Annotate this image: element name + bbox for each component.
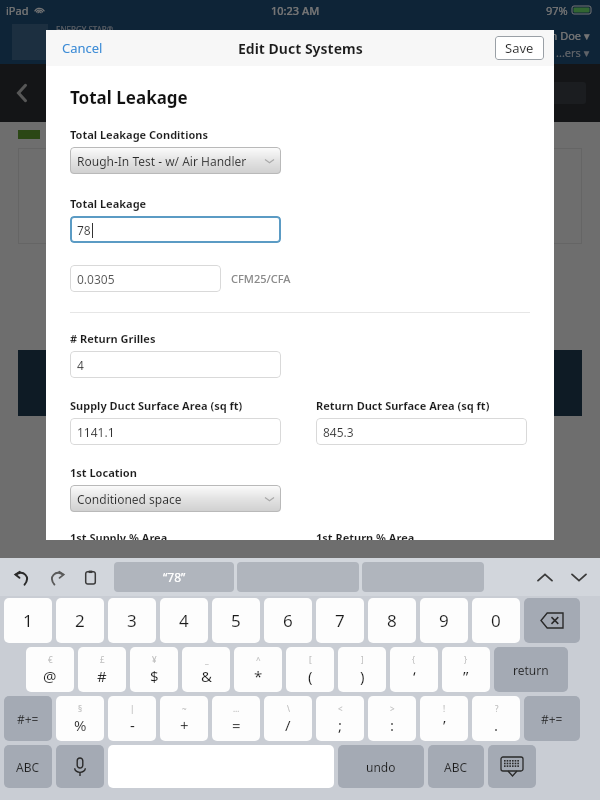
button[interactable]: Cancel (56, 35, 109, 61)
staticText: Supply Duct Surface Area (sq ft) (70, 398, 243, 413)
staticText: 10:23 AM (271, 3, 320, 18)
button[interactable]: € (26, 647, 74, 692)
staticText: # Return Grilles (70, 331, 156, 346)
button[interactable]: … (212, 696, 260, 741)
staticText: ^ (256, 654, 261, 665)
staticText: CFM25/CFA (231, 271, 291, 286)
button[interactable]: 78 (70, 216, 281, 243)
button[interactable]: 4 (160, 598, 208, 643)
staticText: < (338, 703, 343, 714)
staticText: 0.0305 (77, 271, 115, 287)
staticText: . (494, 715, 499, 735)
staticText: 2 (75, 609, 85, 632)
button[interactable]: Undo (8, 563, 36, 591)
button[interactable]: ~ (160, 696, 208, 741)
button[interactable]: ] (338, 647, 386, 692)
staticText: 845.3 (323, 424, 354, 440)
button[interactable]: ABC (428, 745, 484, 788)
button[interactable]: 5 (212, 598, 260, 643)
staticText: iPad (6, 3, 29, 18)
staticText: 0 (491, 609, 501, 632)
button[interactable]: 0 (472, 598, 520, 643)
staticText: 3 (127, 609, 137, 632)
button[interactable]: key (56, 745, 104, 788)
staticText: 9 (439, 609, 449, 632)
staticText: ( (308, 666, 313, 686)
staticText: Total Leakage (70, 196, 147, 211)
button[interactable]: Redo (42, 563, 70, 591)
button[interactable]: £ (78, 647, 126, 692)
button[interactable]: { (390, 647, 438, 692)
button[interactable]: 9 (420, 598, 468, 643)
staticText: ] (361, 654, 364, 665)
button[interactable]: 4 (70, 351, 281, 378)
button[interactable]: 3 (108, 598, 156, 643)
staticText: Hi Jon Doe ▾ (527, 28, 590, 43)
staticText: 1st Supply % Area (70, 530, 168, 540)
staticText: ? (495, 703, 499, 714)
button[interactable]: 7 (316, 598, 364, 643)
staticText: * (254, 666, 263, 686)
staticText: Total Leakage (70, 86, 188, 109)
button[interactable]: 1141.1 (70, 418, 281, 445)
staticText: & (201, 666, 212, 686)
staticText: ¥ (152, 654, 157, 665)
staticText: ! (443, 703, 446, 714)
button[interactable]: 8 (368, 598, 416, 643)
staticText: Total Leakage Conditions (70, 127, 208, 142)
staticText: § (78, 703, 83, 714)
staticText: 1st Location (70, 465, 137, 480)
button[interactable]: < (316, 696, 364, 741)
staticText: Edit Duct Systems (238, 39, 363, 58)
staticText: ABC (444, 759, 468, 775)
staticText: € (48, 654, 53, 665)
button[interactable]: 6 (264, 598, 312, 643)
staticText: + (180, 715, 189, 735)
button[interactable]: Save (495, 36, 544, 60)
button[interactable]: > (368, 696, 416, 741)
staticText: - (130, 715, 135, 735)
staticText: : (390, 715, 395, 735)
staticText: 97% (546, 3, 568, 18)
staticText: 1141.1 (77, 424, 115, 440)
staticText: Cancel (62, 39, 103, 57)
staticText: % (74, 715, 87, 735)
button[interactable]: ^ (234, 647, 282, 692)
button[interactable]: Previous field (532, 564, 558, 590)
button[interactable]: | (108, 696, 156, 741)
button[interactable]: § (56, 696, 104, 741)
staticText: ~ (182, 703, 187, 714)
staticText: #+= (17, 711, 39, 727)
button[interactable]: \ (264, 696, 312, 741)
staticText: … (233, 703, 240, 714)
staticText: ; (338, 715, 343, 735)
button[interactable]: 2 (56, 598, 104, 643)
staticText: | (130, 703, 135, 714)
button[interactable]: _ (182, 647, 230, 692)
button[interactable]: [ (286, 647, 334, 692)
button[interactable]: ! (420, 696, 468, 741)
button[interactable]: ? (472, 696, 520, 741)
button[interactable]: 845.3 (316, 418, 527, 445)
button[interactable]: return (494, 647, 568, 692)
staticText: @ (43, 666, 57, 686)
button[interactable]: “78” (114, 562, 234, 592)
button[interactable]: key (488, 745, 536, 788)
button[interactable]: } (442, 647, 490, 692)
button[interactable]: #+= (4, 696, 52, 741)
button[interactable]: ¥ (130, 647, 178, 692)
button[interactable]: Next field (566, 564, 592, 590)
button[interactable]: key (524, 598, 580, 643)
button[interactable]: Rough-In Test - w/ Air Handler (70, 147, 281, 174)
button[interactable]: Paste (76, 563, 104, 591)
button[interactable]: Conditioned space (70, 485, 281, 512)
button[interactable]: 0.0305 (70, 265, 221, 292)
staticText: Any... (50, 290, 78, 305)
button[interactable]: #+= (524, 696, 580, 741)
button[interactable]: 1 (4, 598, 52, 643)
button[interactable]: undo (338, 745, 424, 788)
button[interactable]: ABC (4, 745, 52, 788)
